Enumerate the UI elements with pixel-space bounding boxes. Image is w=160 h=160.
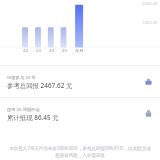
staticText: 投资有风险，入市需谨慎 <box>0 153 160 159</box>
button[interactable]: 已缴参与 25 笔 <box>0 66 160 97</box>
staticText: 累计抵现 86.45 元 <box>7 113 59 122</box>
staticText: 本次投入7张天产品单价2000.00元，参考总回报398.47元，以实际为准 <box>0 145 160 151</box>
staticText: 参考总回报 2467.62 元 <box>7 81 73 90</box>
other: Returns detail <box>144 77 153 86</box>
staticText: 24 <box>49 48 54 54</box>
other: Coupons detail <box>144 109 153 118</box>
staticText: 2000.00 <box>142 1 158 7</box>
staticText: 25 <box>62 48 67 54</box>
staticText: 1000.00 <box>142 20 158 26</box>
staticText: 今日 <box>75 48 84 53</box>
staticText: 使用 25 张期的会 <box>7 106 40 112</box>
staticText: 23 <box>36 48 41 54</box>
button[interactable]: 使用 25 张期的会 <box>0 98 160 129</box>
staticText: 已缴参与 25 笔 <box>7 74 36 80</box>
staticText: 22 <box>23 48 28 54</box>
